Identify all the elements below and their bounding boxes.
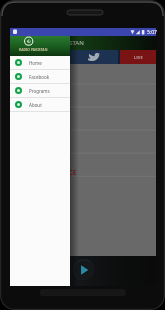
staticText: Home	[29, 60, 42, 66]
button[interactable]: Programs	[10, 84, 70, 97]
staticText: CE	[68, 168, 77, 178]
button[interactable]: LIVE	[120, 50, 156, 64]
staticText: Programs	[29, 88, 50, 94]
staticText: 5:07	[147, 29, 157, 36]
button[interactable]: Facebook	[10, 70, 70, 83]
staticText: RADIO PAKISTAN	[36, 39, 84, 47]
button[interactable]: Home	[10, 56, 70, 69]
button[interactable]	[10, 50, 69, 64]
staticText: Facebook	[29, 74, 50, 80]
staticText: RADIO PAKISTAN	[19, 47, 48, 52]
button[interactable]	[69, 50, 118, 64]
button[interactable]	[73, 259, 94, 280]
staticText: LIVE	[134, 55, 143, 60]
button[interactable]: About	[10, 98, 70, 111]
staticText: About	[29, 102, 42, 108]
